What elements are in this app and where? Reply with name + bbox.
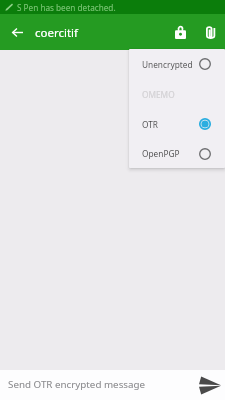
staticText: coercitif — [35, 25, 79, 41]
staticText: Unencrypted — [142, 59, 193, 70]
staticText: Send OTR encrypted message — [8, 378, 146, 391]
button[interactable]: OMEMO — [129, 79, 225, 109]
staticText: OpenPGP — [142, 148, 180, 159]
button[interactable]: Attach file — [195, 14, 225, 50]
button[interactable]: Encryption — [165, 14, 195, 50]
button[interactable]: Send — [195, 370, 225, 400]
button[interactable]: OpenPGP — [129, 139, 225, 168]
staticText: S Pen has been detached. — [17, 2, 116, 13]
button[interactable]: Back — [0, 14, 35, 50]
button[interactable]: OTR — [129, 109, 225, 139]
staticText: OTR — [142, 119, 159, 130]
staticText: OMEMO — [142, 89, 175, 100]
button[interactable]: Unencrypted — [129, 49, 225, 79]
